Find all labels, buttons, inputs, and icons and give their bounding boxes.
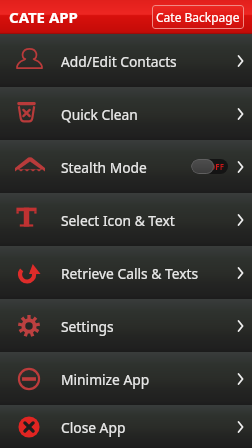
button[interactable]: Quick Clean [0, 87, 252, 140]
button[interactable]: Cate Backpage [152, 5, 244, 29]
staticText: Quick Clean [61, 105, 228, 124]
staticText: Retrieve Calls & Texts [61, 264, 228, 283]
button[interactable]: Select Icon & Text [0, 193, 252, 246]
button[interactable]: Stealth Mode [0, 140, 252, 193]
staticText: Settings [61, 317, 228, 336]
staticText: CATE APP [9, 7, 78, 27]
button[interactable]: Stealth Mode toggle, off [191, 159, 228, 174]
staticText: Add/Edit Contacts [61, 52, 228, 71]
button[interactable]: Add/Edit Contacts [0, 34, 252, 87]
staticText: Minimize App [61, 370, 228, 389]
button[interactable]: Retrieve Calls & Texts [0, 246, 252, 299]
staticText: OFF [209, 161, 225, 172]
staticText: Select Icon & Text [61, 211, 228, 230]
button[interactable]: Close App [0, 405, 252, 448]
button[interactable]: Settings [0, 299, 252, 352]
button[interactable]: Minimize App [0, 352, 252, 405]
staticText: Cate Backpage [156, 9, 240, 25]
staticText: Close App [61, 418, 228, 437]
staticText: Stealth Mode [61, 158, 191, 177]
